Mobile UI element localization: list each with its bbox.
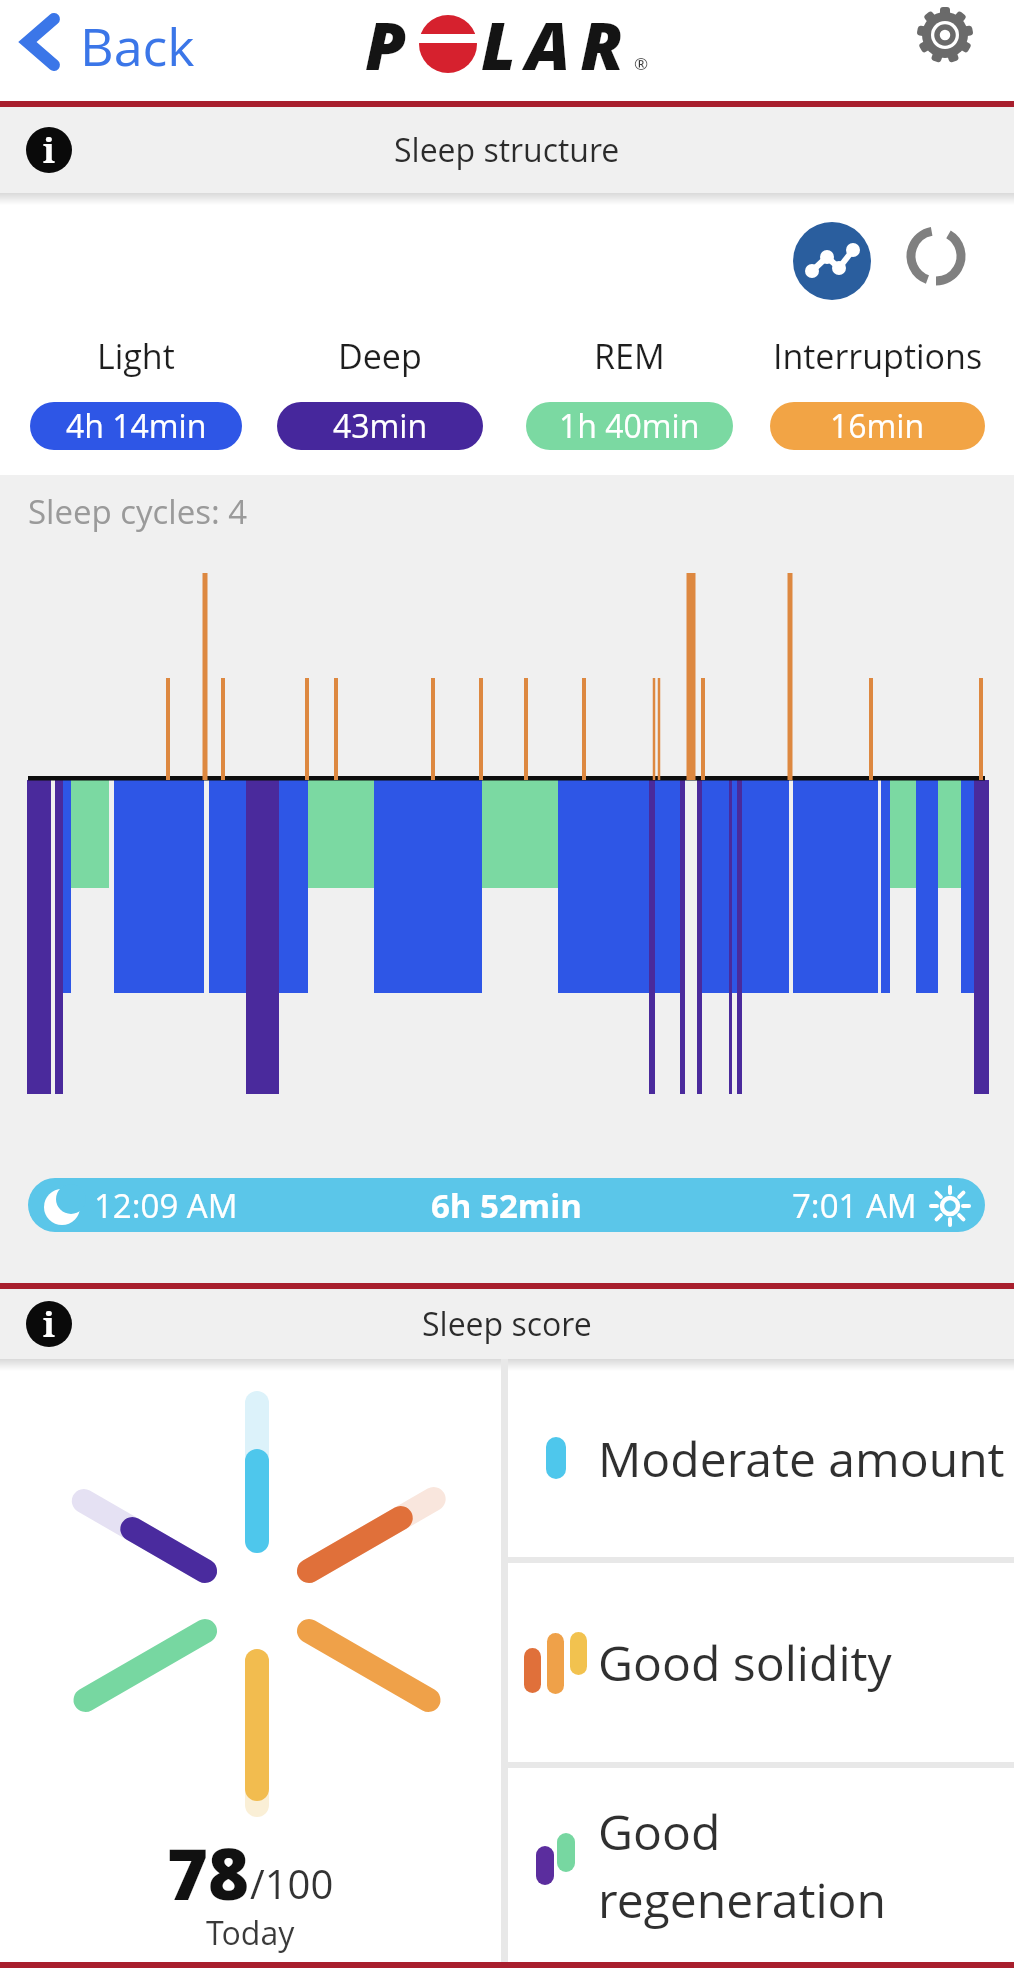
button[interactable]: Good regeneration <box>508 1768 1014 1962</box>
staticText: REM <box>594 333 665 379</box>
staticText: Back <box>80 10 195 74</box>
button[interactable] <box>906 226 966 286</box>
button[interactable]: Back <box>24 10 195 74</box>
staticText: 7:01 AM <box>792 1183 917 1228</box>
staticText: 4h 14min <box>66 404 207 448</box>
staticText: LAR <box>481 0 634 89</box>
staticText: P <box>365 0 417 89</box>
staticText: 1h 40min <box>559 404 700 448</box>
staticText: Today <box>206 1911 295 1955</box>
staticText: Moderate amount <box>598 1426 1005 1491</box>
staticText: Interruptions <box>773 333 983 379</box>
staticText: Good regeneration <box>598 1799 887 1932</box>
staticText: 78 <box>167 1825 250 1920</box>
staticText: Sleep cycles: 4 <box>28 489 248 534</box>
button[interactable]: Moderate amount <box>508 1359 1014 1557</box>
staticText: 43min <box>333 404 428 448</box>
staticText: Sleep score <box>422 1302 592 1346</box>
staticText: /100 <box>250 1856 334 1910</box>
staticText: i <box>43 1301 55 1347</box>
staticText: ® <box>634 52 649 75</box>
button[interactable]: i <box>26 1301 72 1347</box>
button[interactable] <box>916 6 974 64</box>
staticText: 16min <box>830 404 925 448</box>
staticText: Good solidity <box>598 1630 892 1695</box>
staticText: 12:09 AM <box>94 1183 238 1228</box>
staticText: Deep <box>338 333 422 379</box>
button[interactable]: Good solidity <box>508 1563 1014 1762</box>
staticText: i <box>43 127 55 173</box>
staticText: Light <box>97 333 175 379</box>
staticText: Sleep structure <box>394 128 620 172</box>
button[interactable] <box>793 222 871 300</box>
staticText: 6h 52min <box>431 1183 582 1228</box>
button[interactable]: i <box>26 127 72 173</box>
